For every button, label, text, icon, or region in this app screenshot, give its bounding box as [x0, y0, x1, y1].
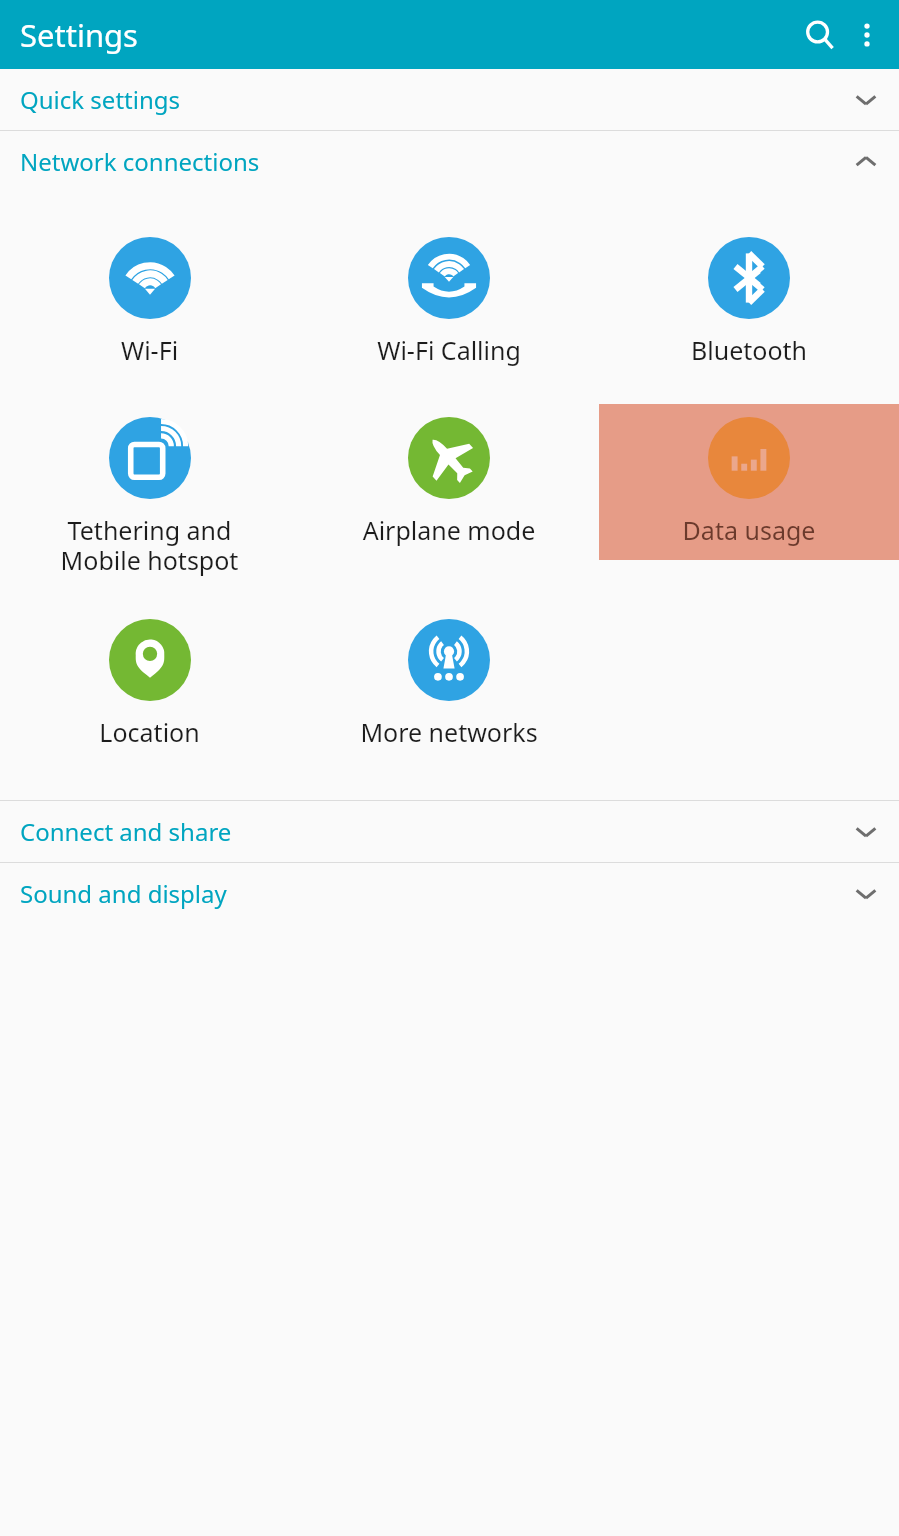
button[interactable]: Sound and display	[0, 863, 899, 924]
staticText: Bluetooth	[599, 333, 899, 367]
staticText: Network connections	[20, 145, 853, 178]
staticText: Connect and share	[20, 815, 853, 848]
button[interactable]: Connect and share	[0, 801, 899, 862]
button[interactable]: Quick settings	[0, 69, 899, 130]
button[interactable]: More options	[845, 13, 889, 57]
button[interactable]: Network connections	[0, 131, 899, 192]
button[interactable]: Wi-Fi	[0, 224, 299, 380]
staticText: Data usage	[599, 513, 899, 547]
button[interactable]: Bluetooth	[599, 224, 899, 380]
staticText: Location	[0, 715, 299, 749]
staticText: Settings	[20, 14, 138, 56]
staticText: Wi-Fi	[0, 333, 299, 367]
button[interactable]: Data usage	[599, 404, 899, 560]
button[interactable]: Search	[798, 13, 842, 57]
staticText: Sound and display	[20, 877, 853, 910]
staticText: More networks	[299, 715, 599, 749]
staticText: Airplane mode	[299, 513, 599, 547]
staticText: Wi-Fi Calling	[299, 333, 599, 367]
button[interactable]: Tethering and Mobile hotspot	[0, 404, 299, 590]
button[interactable]: More networks	[299, 606, 599, 762]
button[interactable]: Airplane mode	[299, 404, 599, 560]
staticText: Quick settings	[20, 83, 853, 116]
button[interactable]: Location	[0, 606, 299, 762]
button[interactable]: Wi-Fi Calling	[299, 224, 599, 380]
staticText: Tethering and Mobile hotspot	[0, 513, 299, 577]
